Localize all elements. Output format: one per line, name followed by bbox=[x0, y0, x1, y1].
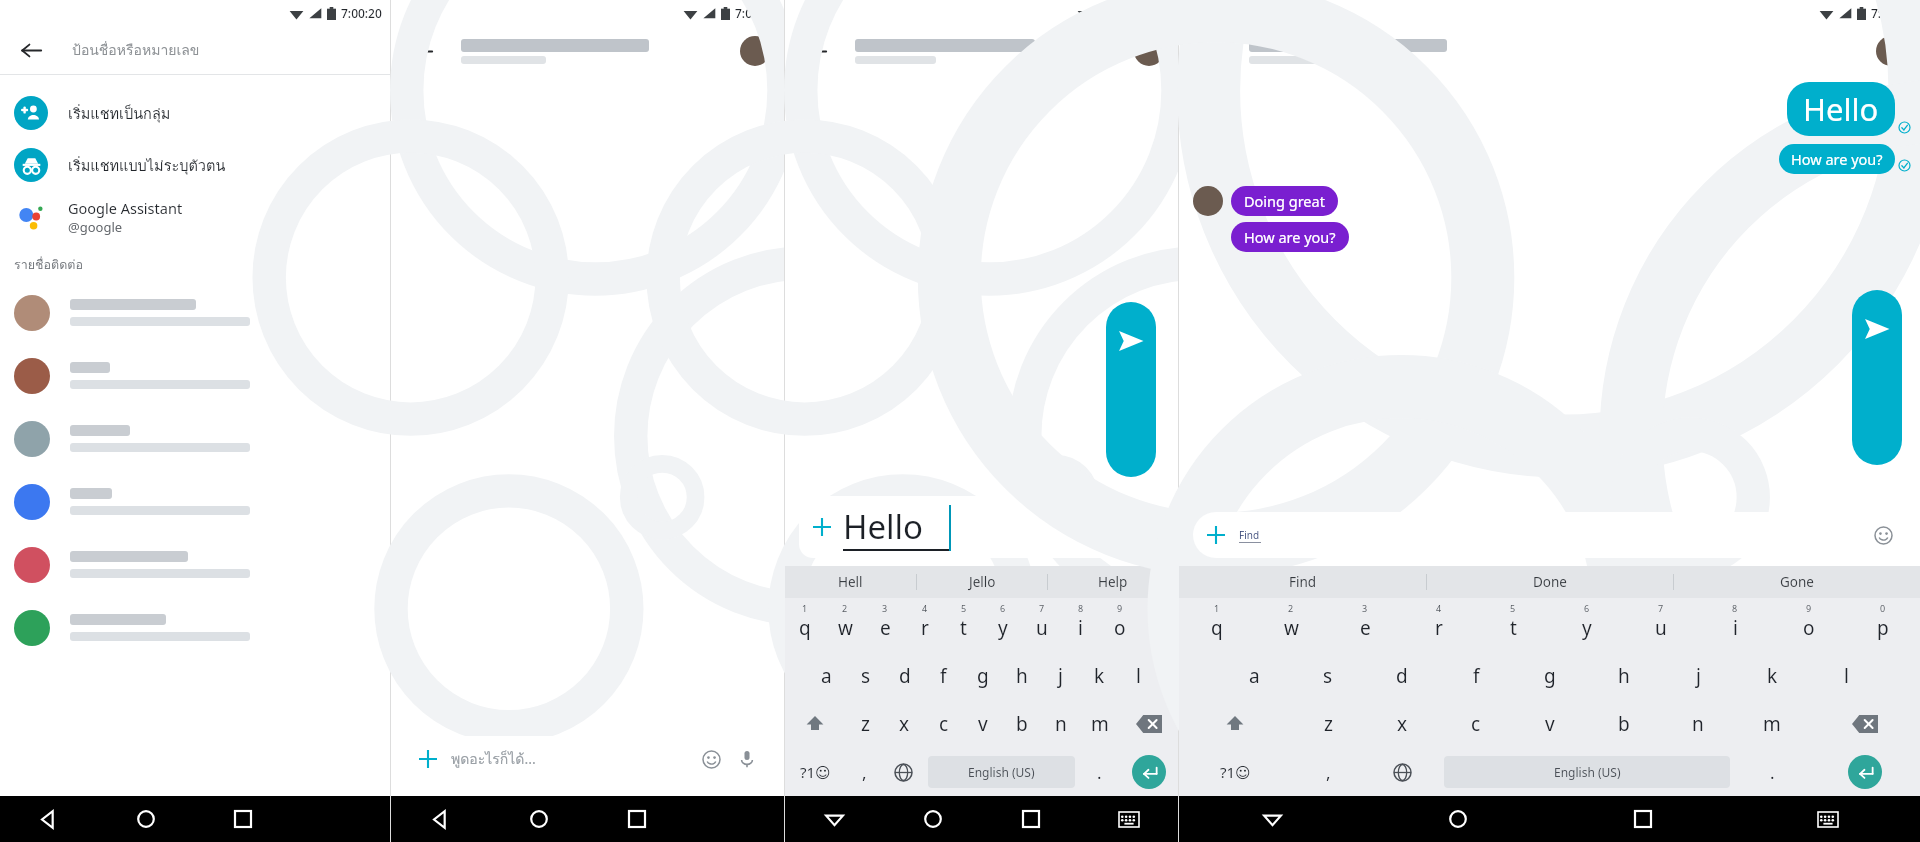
button[interactable]: a bbox=[1217, 652, 1291, 700]
button[interactable]: Enter bbox=[1119, 748, 1178, 796]
button[interactable]: h bbox=[1002, 652, 1041, 700]
button[interactable]: j bbox=[1041, 652, 1080, 700]
button[interactable]: Send bbox=[1106, 302, 1156, 477]
button[interactable]: 6 bbox=[983, 598, 1022, 652]
button[interactable]: Back bbox=[391, 796, 490, 842]
button[interactable]: l bbox=[1809, 652, 1883, 700]
button[interactable]: 9 bbox=[1772, 598, 1846, 652]
button[interactable]: s bbox=[846, 652, 885, 700]
button[interactable] bbox=[0, 344, 390, 407]
button[interactable]: Help bbox=[1048, 566, 1178, 598]
button[interactable]: 9 bbox=[1100, 598, 1139, 652]
button[interactable]: 6 bbox=[1550, 598, 1624, 652]
button[interactable]: Recents bbox=[194, 796, 292, 842]
button[interactable]: b bbox=[1587, 700, 1661, 748]
button[interactable]: Contact details bbox=[740, 36, 770, 66]
button[interactable]: Back bbox=[0, 796, 97, 842]
button[interactable]: . bbox=[1735, 748, 1809, 796]
button[interactable]: 8 bbox=[1061, 598, 1100, 652]
button[interactable]: , bbox=[1291, 748, 1365, 796]
button[interactable]: ?1☺ bbox=[1179, 748, 1291, 796]
button[interactable]: Attach bbox=[1205, 524, 1227, 546]
button[interactable]: Recents bbox=[1550, 796, 1735, 842]
button[interactable]: Home bbox=[490, 796, 588, 842]
button[interactable]: l bbox=[1119, 652, 1158, 700]
button[interactable]: Jello bbox=[917, 566, 1047, 598]
button[interactable]: Shift bbox=[785, 700, 845, 748]
button[interactable]: c bbox=[924, 700, 963, 748]
button[interactable]: 2 bbox=[825, 598, 865, 652]
button[interactable]: 4 bbox=[1402, 598, 1476, 652]
button[interactable]: b bbox=[1002, 700, 1041, 748]
button[interactable]: Hide keyboard bbox=[1080, 796, 1178, 842]
button[interactable]: Backspace bbox=[1809, 700, 1920, 748]
button[interactable]: k bbox=[1735, 652, 1809, 700]
button[interactable]: 5 bbox=[1476, 598, 1550, 652]
button[interactable]: Attach bbox=[799, 496, 1164, 558]
button[interactable]: Attach bbox=[1193, 512, 1906, 558]
button[interactable]: Emoji bbox=[1872, 524, 1894, 546]
button[interactable]: Contact details bbox=[1876, 36, 1906, 66]
button[interactable]: English (US) bbox=[1444, 756, 1730, 788]
button[interactable]: Doing great bbox=[1231, 186, 1338, 216]
button[interactable]: Home bbox=[97, 796, 194, 842]
button[interactable]: Done bbox=[1427, 566, 1673, 598]
button[interactable]: x bbox=[1365, 700, 1439, 748]
button[interactable]: How are you? bbox=[1779, 144, 1895, 174]
button[interactable]: k bbox=[1080, 652, 1119, 700]
button[interactable]: Gone bbox=[1674, 566, 1920, 598]
button[interactable]: Back bbox=[799, 34, 833, 68]
button[interactable]: Back bbox=[1179, 796, 1365, 842]
button[interactable]: Recents bbox=[982, 796, 1080, 842]
button[interactable]: d bbox=[885, 652, 924, 700]
button[interactable]: Back bbox=[14, 33, 48, 67]
button[interactable]: Contact details bbox=[1134, 36, 1164, 66]
button[interactable]: English (US) bbox=[928, 756, 1075, 788]
button[interactable]: 7 bbox=[1624, 598, 1698, 652]
button[interactable]: Enter bbox=[1809, 748, 1920, 796]
button[interactable]: 1 bbox=[1179, 598, 1254, 652]
button[interactable]: j bbox=[1661, 652, 1735, 700]
button[interactable]: Home bbox=[1365, 796, 1550, 842]
button[interactable]: 0 bbox=[1846, 598, 1920, 652]
button[interactable]: m bbox=[1080, 700, 1119, 748]
button[interactable]: Hide keyboard bbox=[1735, 796, 1920, 842]
button[interactable]: 4 bbox=[905, 598, 944, 652]
button[interactable]: d bbox=[1365, 652, 1439, 700]
button[interactable]: z bbox=[1291, 700, 1365, 748]
button[interactable]: 7 bbox=[1022, 598, 1061, 652]
button[interactable]: Change language bbox=[1365, 748, 1439, 796]
button[interactable]: Send bbox=[1852, 290, 1902, 465]
button[interactable]: Back bbox=[785, 796, 884, 842]
button[interactable]: Google Assistant bbox=[0, 191, 390, 243]
button[interactable]: เริ่มแชทแบบไม่ระบุตัวตน bbox=[0, 139, 390, 191]
button[interactable]: z bbox=[845, 700, 885, 748]
button[interactable]: Find bbox=[1179, 566, 1426, 598]
button[interactable]: . bbox=[1080, 748, 1119, 796]
button[interactable]: a bbox=[806, 652, 846, 700]
button[interactable]: c bbox=[1439, 700, 1513, 748]
button[interactable]: Hello bbox=[1787, 82, 1895, 136]
button[interactable]: Recents bbox=[588, 796, 686, 842]
button[interactable]: Hell bbox=[785, 566, 916, 598]
button[interactable]: Attach bbox=[405, 736, 770, 782]
button[interactable] bbox=[0, 533, 390, 596]
button[interactable]: ?1☺ bbox=[785, 748, 845, 796]
button[interactable]: Attach bbox=[417, 748, 439, 770]
button[interactable]: x bbox=[885, 700, 924, 748]
button[interactable]: Voice message bbox=[736, 748, 758, 770]
button[interactable]: Back bbox=[405, 34, 439, 68]
button[interactable]: 8 bbox=[1698, 598, 1772, 652]
button[interactable]: Attach bbox=[811, 516, 833, 538]
button[interactable]: Emoji bbox=[700, 748, 722, 770]
button[interactable]: n bbox=[1041, 700, 1080, 748]
button[interactable]: s bbox=[1291, 652, 1365, 700]
button[interactable]: v bbox=[1513, 700, 1587, 748]
button[interactable]: f bbox=[924, 652, 963, 700]
button[interactable]: , bbox=[845, 748, 884, 796]
button[interactable] bbox=[0, 281, 390, 344]
button[interactable]: Change language bbox=[884, 748, 923, 796]
